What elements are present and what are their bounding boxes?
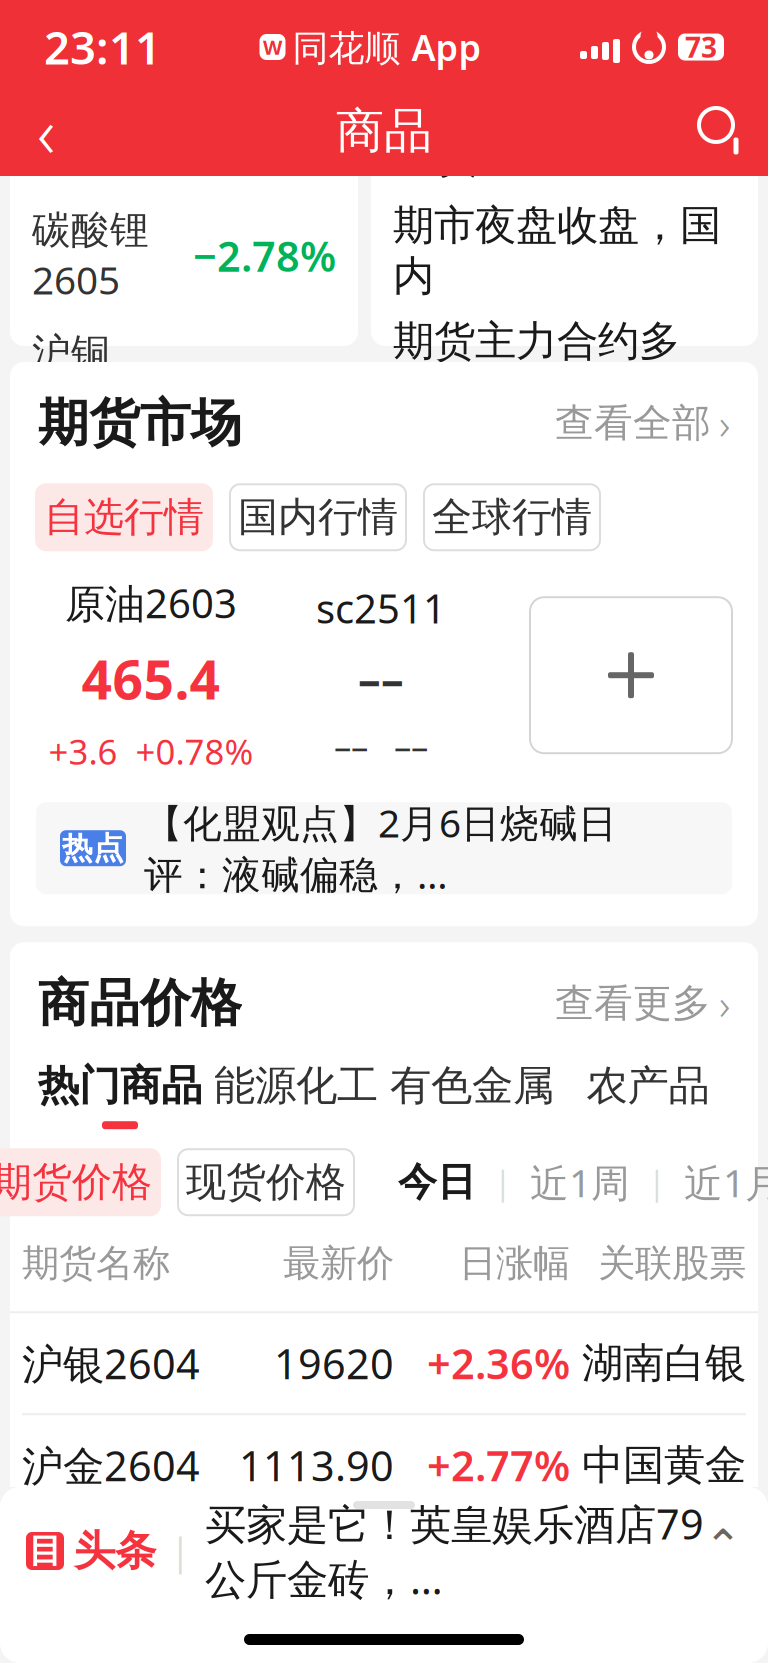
staticText: 碳酸锂2605 — [32, 206, 149, 305]
staticText: 原油2603 — [65, 576, 237, 629]
staticText: 查看更多 — [555, 980, 711, 1027]
staticText: 日涨幅 — [459, 1240, 570, 1286]
staticText: –– — [394, 723, 428, 769]
staticText: 沪金2604 — [22, 1438, 200, 1493]
staticText: –– — [334, 723, 368, 769]
staticText: +0.78% — [135, 728, 253, 774]
staticText: ⌃ — [704, 1520, 742, 1572]
staticText: sc2511 — [316, 581, 446, 635]
staticText: 全球行情 — [432, 493, 592, 542]
button[interactable]: 有色金属 — [384, 1060, 560, 1129]
button[interactable]: 现货价格 — [178, 1149, 354, 1215]
staticText: 热门商品 — [38, 1060, 202, 1111]
staticText: › — [719, 975, 730, 1032]
staticText: ‹ — [37, 85, 55, 177]
staticText: 农产品 — [586, 1060, 709, 1111]
button[interactable]: 自选行情 — [36, 484, 212, 550]
staticText: 73 — [685, 28, 717, 66]
button[interactable]: 期货价格 — [0, 1149, 160, 1215]
button[interactable]: 近1周 — [530, 1156, 630, 1208]
button[interactable]: 国内行情 — [230, 484, 406, 550]
staticText: +1.55% — [193, 351, 336, 406]
staticText: +2.77% — [427, 1438, 570, 1493]
button[interactable]: 能源化工 — [208, 1060, 384, 1129]
staticText: 现货价格 — [186, 1158, 346, 1207]
staticText: 沪铜2603 — [32, 329, 120, 428]
button[interactable]: 期货快讯 — [371, 114, 758, 346]
button[interactable]: 今日 — [398, 1158, 476, 1206]
staticText: 头条 — [74, 1526, 156, 1576]
staticText: 热点 — [62, 829, 124, 867]
staticText: | — [494, 1161, 512, 1203]
button[interactable]: 近1月 — [684, 1156, 768, 1208]
button[interactable]: 热点 — [36, 802, 732, 894]
staticText: 期市夜盘收盘，国内 — [393, 200, 721, 302]
button[interactable]: 全球行情 — [424, 484, 600, 550]
staticText: 关联股票 — [598, 1240, 746, 1286]
button[interactable]: 沪银2604 — [0, 1313, 768, 1415]
staticText: 有色金属 — [32, 130, 204, 182]
staticText: 期货市场 — [38, 392, 242, 454]
staticText: 期货快讯 — [393, 130, 565, 182]
staticText: 自选行情 — [44, 493, 204, 542]
staticText: 今日 — [398, 1158, 476, 1206]
staticText: 有色金属 — [390, 1060, 554, 1111]
button[interactable]: 热门商品 — [32, 1060, 208, 1129]
staticText: −1.49% — [193, 474, 336, 529]
staticText: › — [719, 395, 730, 451]
button[interactable]: 农产品 — [560, 1060, 736, 1129]
staticText: | — [170, 1526, 191, 1576]
button[interactable]: 搜索 — [676, 94, 768, 168]
staticText: 买家是它！英皇娱乐酒店79公斤金砖，… — [205, 1496, 704, 1606]
staticText: 氧化铝2605 — [32, 452, 149, 551]
button[interactable]: 查看全部 — [555, 395, 730, 451]
staticText: 1113.90 — [239, 1438, 394, 1493]
staticText: 近1周 — [530, 1156, 630, 1208]
button[interactable]: 目 — [0, 1509, 768, 1593]
staticText: −2.26% — [537, 435, 651, 480]
staticText: 国内行情 — [238, 493, 398, 542]
button[interactable]: 有色金属 — [10, 114, 358, 346]
button[interactable]: 添加自选 — [530, 597, 732, 753]
staticText: W — [263, 34, 282, 60]
staticText: 沪银2604 — [22, 1336, 200, 1391]
staticText: 查看全部 — [555, 399, 711, 447]
staticText: 同花顺 App — [292, 23, 481, 71]
button[interactable]: 返回 — [0, 94, 92, 168]
staticText: 商品 — [336, 101, 432, 160]
staticText: −2.78% — [193, 228, 336, 283]
staticText: +3.6 — [48, 728, 117, 774]
staticText: | — [648, 1161, 666, 1203]
staticText: 期货主力合约多数… — [393, 316, 680, 421]
staticText: 期货名称 — [22, 1240, 170, 1286]
staticText: 465.4 — [81, 643, 220, 714]
staticText: 期货价格 — [0, 1158, 152, 1207]
staticText: +2.36% — [427, 1336, 570, 1391]
staticText: 最新价 — [283, 1240, 394, 1286]
staticText: 能源化工 — [214, 1060, 378, 1111]
staticText: › — [724, 126, 736, 186]
staticText: 目 — [28, 1530, 61, 1571]
staticText: 19620 — [274, 1336, 394, 1391]
button[interactable]: 查看更多 — [555, 975, 730, 1032]
staticText: 湖南白银 — [582, 1338, 746, 1389]
staticText: 中国黄金 — [582, 1440, 746, 1491]
staticText: 商品价格 — [38, 972, 242, 1034]
staticText: 23:11 — [44, 17, 161, 77]
button[interactable]: 沪金2604 — [0, 1415, 768, 1517]
staticText: 【化盟观点】2月6日烧碱日评：液碱偏稳，… — [144, 797, 617, 900]
staticText: 近1月 — [684, 1156, 768, 1208]
staticText: –– — [358, 649, 404, 709]
